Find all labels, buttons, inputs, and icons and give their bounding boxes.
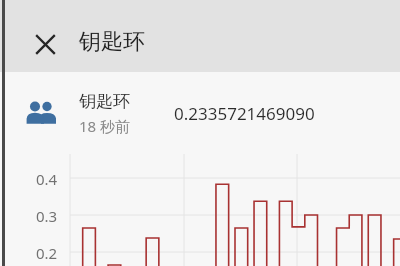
staticText: 18 秒前 (79, 116, 131, 136)
button[interactable]: Close (29, 28, 61, 60)
staticText: 钥匙环 (79, 28, 145, 56)
staticText: 0.2335721469090 (174, 102, 315, 125)
staticText: 0.2 (36, 243, 58, 263)
staticText: 0.3 (36, 206, 58, 226)
button[interactable]: 钥匙环 (0, 72, 400, 154)
staticText: 0.4 (36, 169, 58, 189)
staticText: 钥匙环 (79, 91, 130, 112)
